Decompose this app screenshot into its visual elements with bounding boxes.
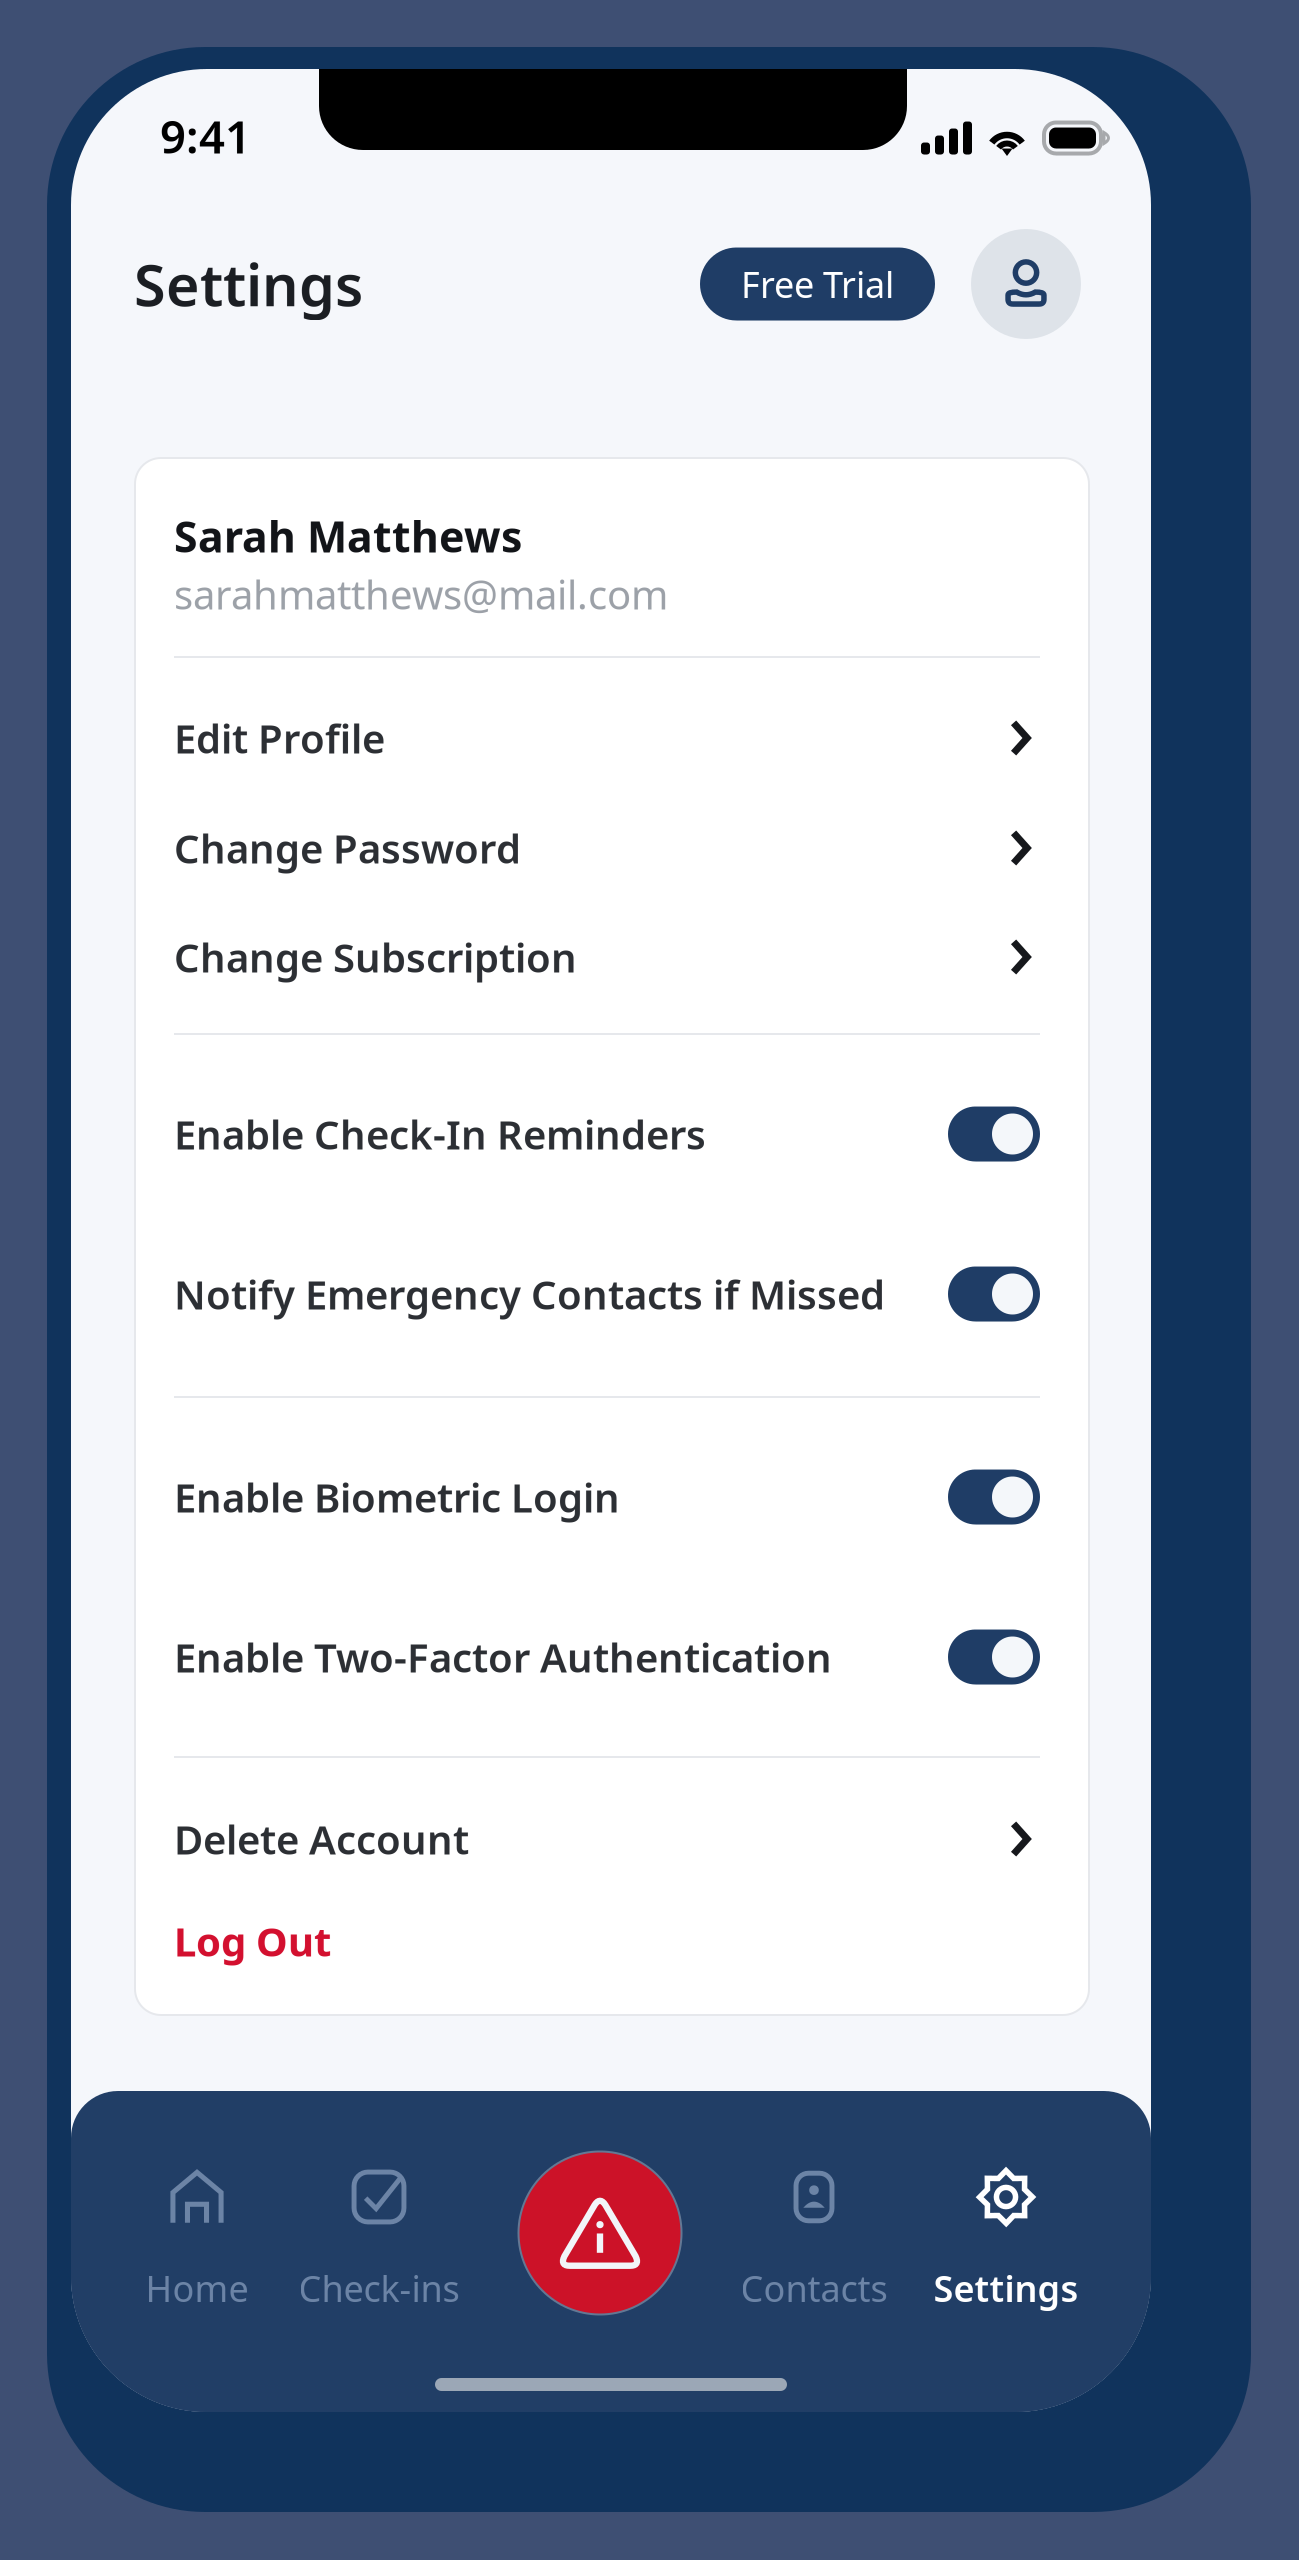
staticText: Settings [933,2264,1078,2312]
staticText: Enable Biometric Login [174,1470,620,1523]
button[interactable]: Enable Two-Factor Authentication [174,1577,1040,1737]
button[interactable]: Home [92,2165,302,2308]
staticText: sarahmatthews@mail.com [174,567,668,620]
staticText: Edit Profile [174,711,385,764]
button[interactable]: Contacts [709,2165,919,2308]
staticText: Settings [134,246,363,322]
button[interactable]: Log Out [174,1891,1040,1991]
staticText: Change Password [174,821,521,874]
button[interactable]: Emergency SOS [517,2150,683,2316]
staticText: Change Subscription [174,930,577,983]
button[interactable]: Enable Biometric Login [174,1417,1040,1577]
staticText: Free Trial [741,260,894,308]
button[interactable]: Change Subscription [174,903,1040,1011]
button[interactable]: Change Password [174,793,1040,903]
button[interactable]: Account [971,229,1081,339]
staticText: 9:41 [160,106,251,166]
button[interactable]: Check-ins [274,2165,484,2308]
button[interactable]: Edit Profile [174,683,1040,793]
staticText: Contacts [740,2264,887,2312]
staticText: Sarah Matthews [174,508,522,564]
staticText: Notify Emergency Contacts if Missed [174,1267,885,1320]
button[interactable]: Notify Emergency Contacts if Missed [174,1214,1040,1374]
staticText: Delete Account [174,1812,469,1865]
button[interactable]: Delete Account [174,1787,1040,1891]
staticText: Enable Check-In Reminders [174,1107,706,1160]
button[interactable]: Enable Check-In Reminders [174,1054,1040,1214]
button[interactable]: Free Trial [700,247,935,320]
staticText: Log Out [174,1914,331,1967]
button[interactable]: Settings [901,2165,1111,2308]
staticText: Check-ins [298,2264,459,2312]
staticText: Enable Two-Factor Authentication [174,1630,832,1683]
staticText: Home [145,2264,248,2312]
